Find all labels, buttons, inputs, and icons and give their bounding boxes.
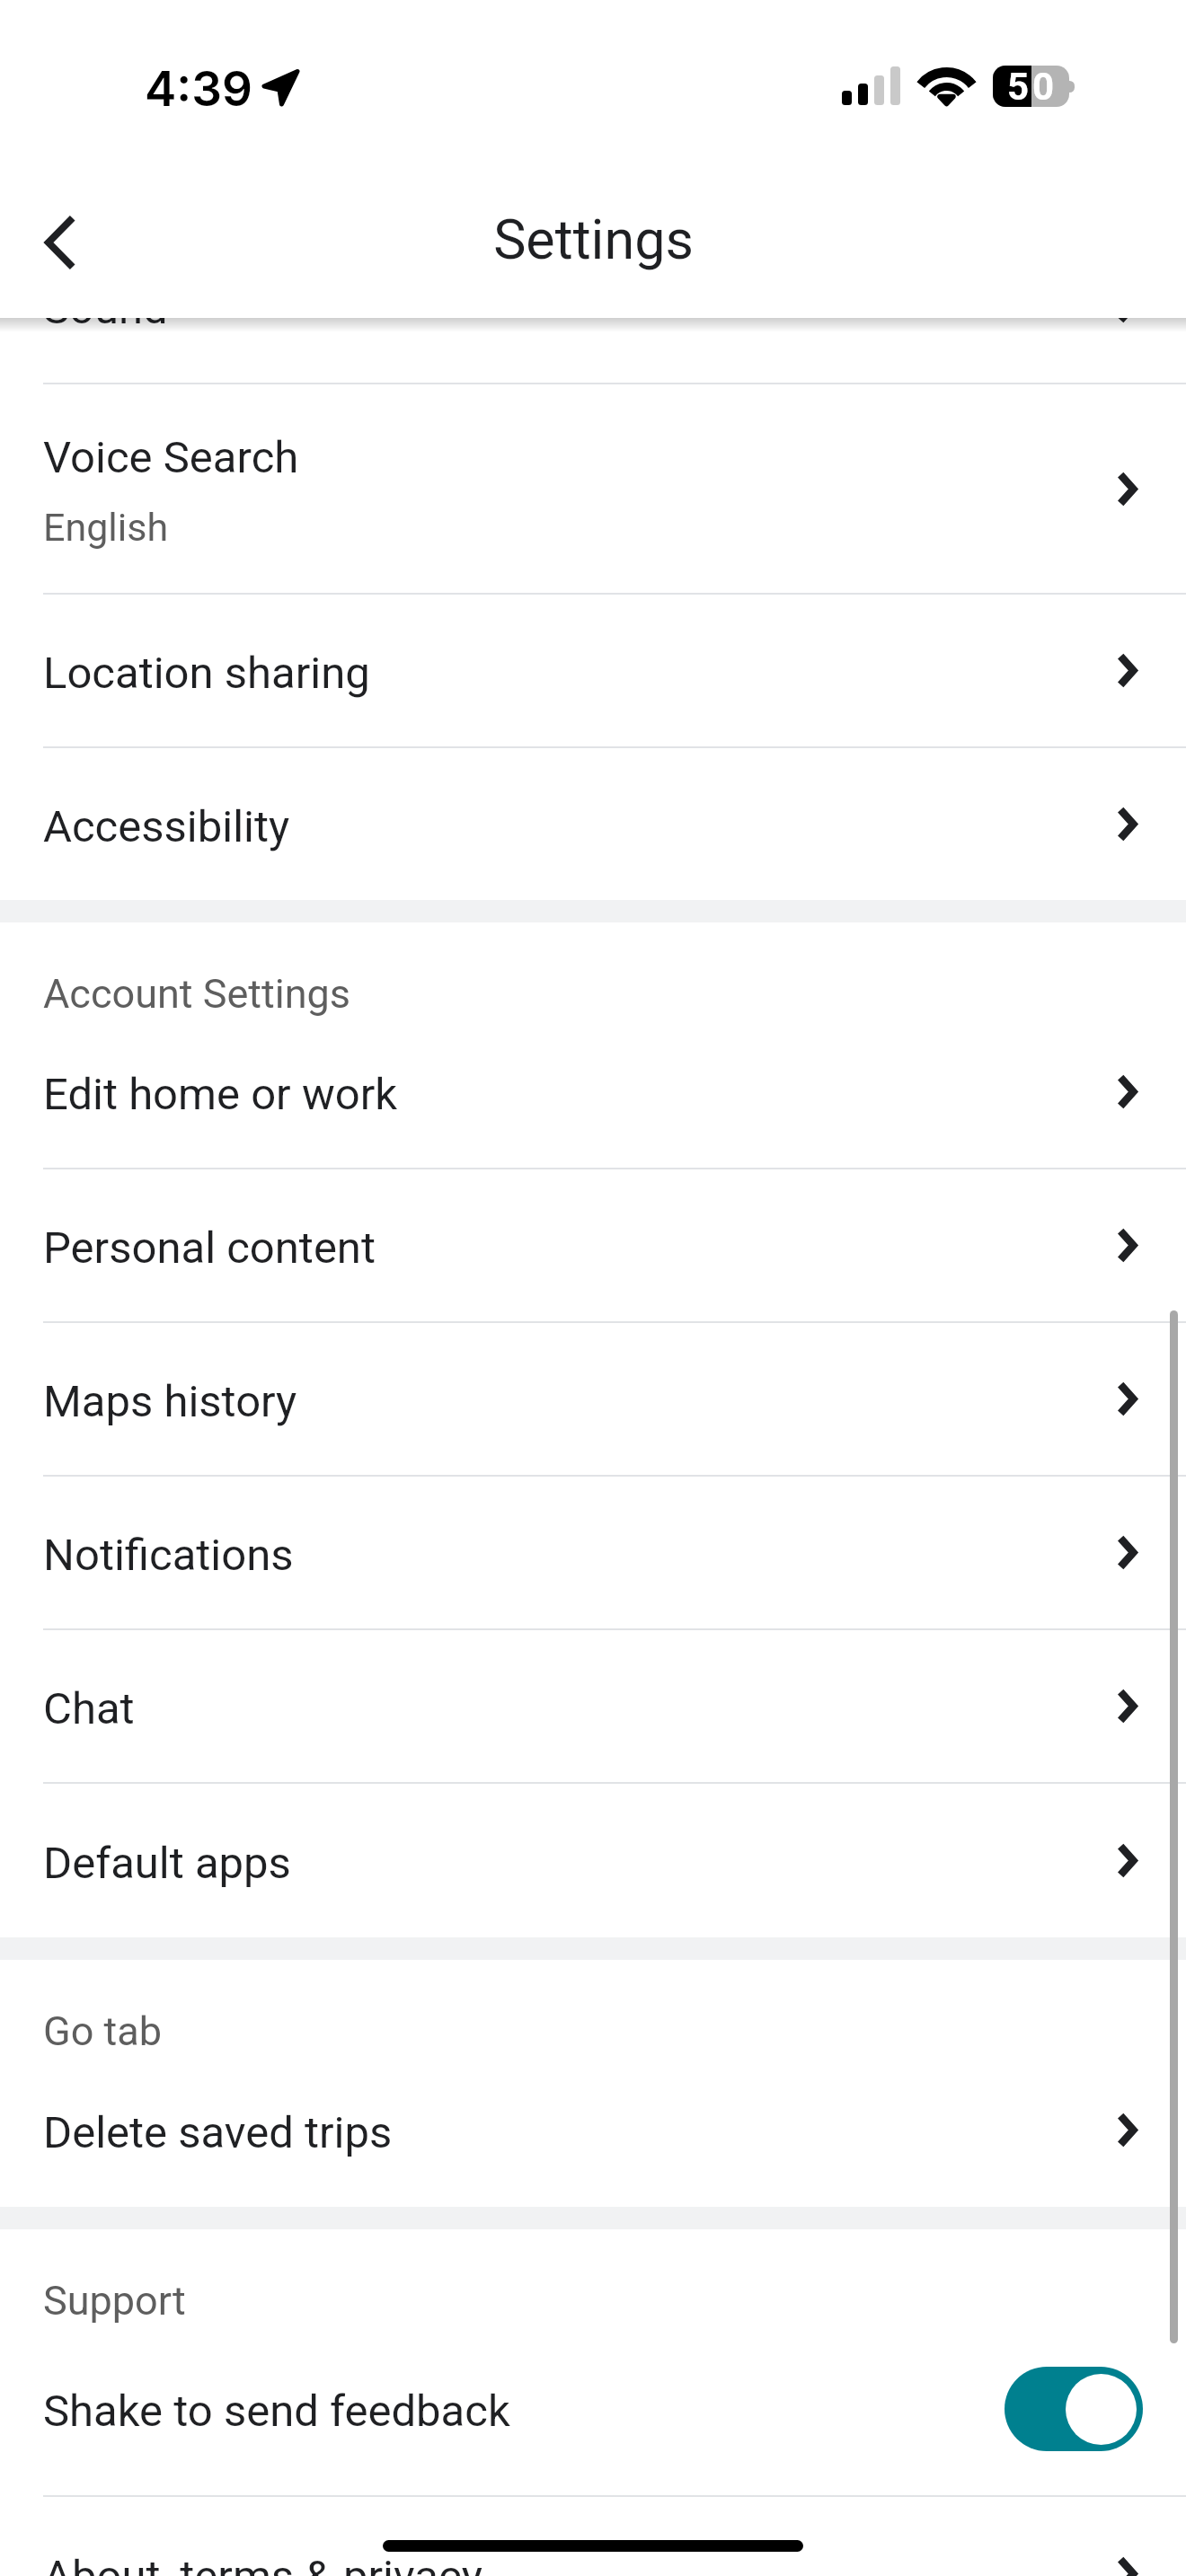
button[interactable]: Shake to send feedback <box>0 2323 1186 2495</box>
button[interactable]: Sound <box>0 229 1186 383</box>
button[interactable]: Edit home or work <box>0 1016 1186 1168</box>
staticText: Account Settings <box>43 970 350 1016</box>
staticText: Delete saved trips <box>43 2107 393 2158</box>
button[interactable]: About, terms & privacy <box>0 2497 1186 2576</box>
staticText: Notifications <box>43 1530 294 1581</box>
button[interactable]: Default apps <box>0 1784 1186 1937</box>
button[interactable]: Maps history <box>0 1323 1186 1475</box>
button[interactable]: Personal content <box>0 1169 1186 1321</box>
staticText: Settings <box>493 207 694 271</box>
staticText: Accessibility <box>43 801 290 852</box>
staticText: Support <box>43 2277 186 2323</box>
button[interactable]: Delete saved trips <box>0 2053 1186 2207</box>
staticText: About, terms & privacy <box>43 2551 482 2576</box>
staticText: Maps history <box>43 1376 297 1427</box>
button[interactable]: Notifications <box>0 1477 1186 1628</box>
staticText: Chat <box>43 1683 135 1734</box>
staticText: Go tab <box>43 2007 162 2053</box>
button[interactable]: Location sharing <box>0 595 1186 746</box>
staticText: Default apps <box>43 1838 291 1889</box>
staticText: Personal content <box>43 1222 376 1274</box>
button[interactable]: Back <box>9 168 108 294</box>
button[interactable]: Chat <box>0 1630 1186 1782</box>
staticText: 4:39 <box>145 60 252 118</box>
staticText: Shake to send feedback <box>43 2386 510 2437</box>
staticText: Edit home or work <box>43 1069 398 1120</box>
staticText: Sound <box>43 283 168 334</box>
staticText: Location sharing <box>43 648 370 699</box>
button[interactable]: Accessibility <box>0 748 1186 900</box>
staticText: Voice Search <box>43 432 299 483</box>
staticText: 50 <box>1007 66 1058 106</box>
button[interactable]: Voice Search <box>0 384 1186 593</box>
staticText: English <box>43 505 169 550</box>
